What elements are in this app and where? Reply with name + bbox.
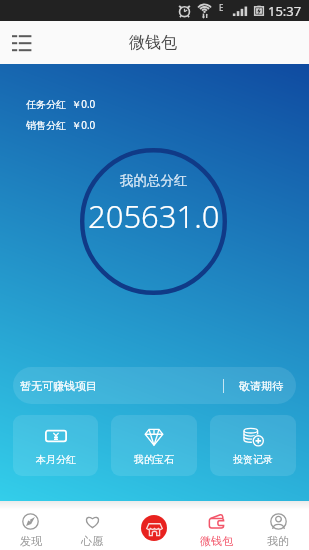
button[interactable]: 心愿: [61, 501, 123, 550]
staticText: 微钱包: [129, 33, 177, 53]
button[interactable]: 发现: [0, 501, 61, 550]
button[interactable]: 本月分红: [13, 415, 98, 476]
staticText: 205631.0: [88, 195, 220, 237]
button[interactable]: 商城: [141, 515, 167, 541]
staticText: 暂无可赚钱项目: [20, 379, 97, 393]
staticText: 我的总分红: [120, 172, 188, 189]
staticText: 心愿: [81, 534, 103, 548]
staticText: 我的宝石: [134, 453, 174, 466]
staticText: 销售分红 ￥0.0: [26, 118, 96, 132]
staticText: E: [219, 2, 224, 13]
staticText: 敬请期待: [239, 379, 283, 393]
button[interactable]: 暂无可赚钱项目: [13, 367, 296, 404]
staticText: 本月分红: [36, 453, 76, 466]
staticText: 我的: [267, 534, 289, 548]
button[interactable]: 我的宝石: [111, 415, 197, 476]
button[interactable]: Menu: [4, 25, 40, 61]
button[interactable]: 我的: [247, 501, 309, 550]
button[interactable]: 微钱包: [185, 501, 247, 550]
staticText: 任务分红 ￥0.0: [26, 97, 96, 111]
staticText: 投资记录: [233, 453, 273, 466]
button[interactable]: 投资记录: [210, 415, 296, 476]
staticText: 微钱包: [200, 534, 233, 548]
staticText: 发现: [20, 534, 42, 548]
staticText: 15:37: [268, 2, 302, 20]
